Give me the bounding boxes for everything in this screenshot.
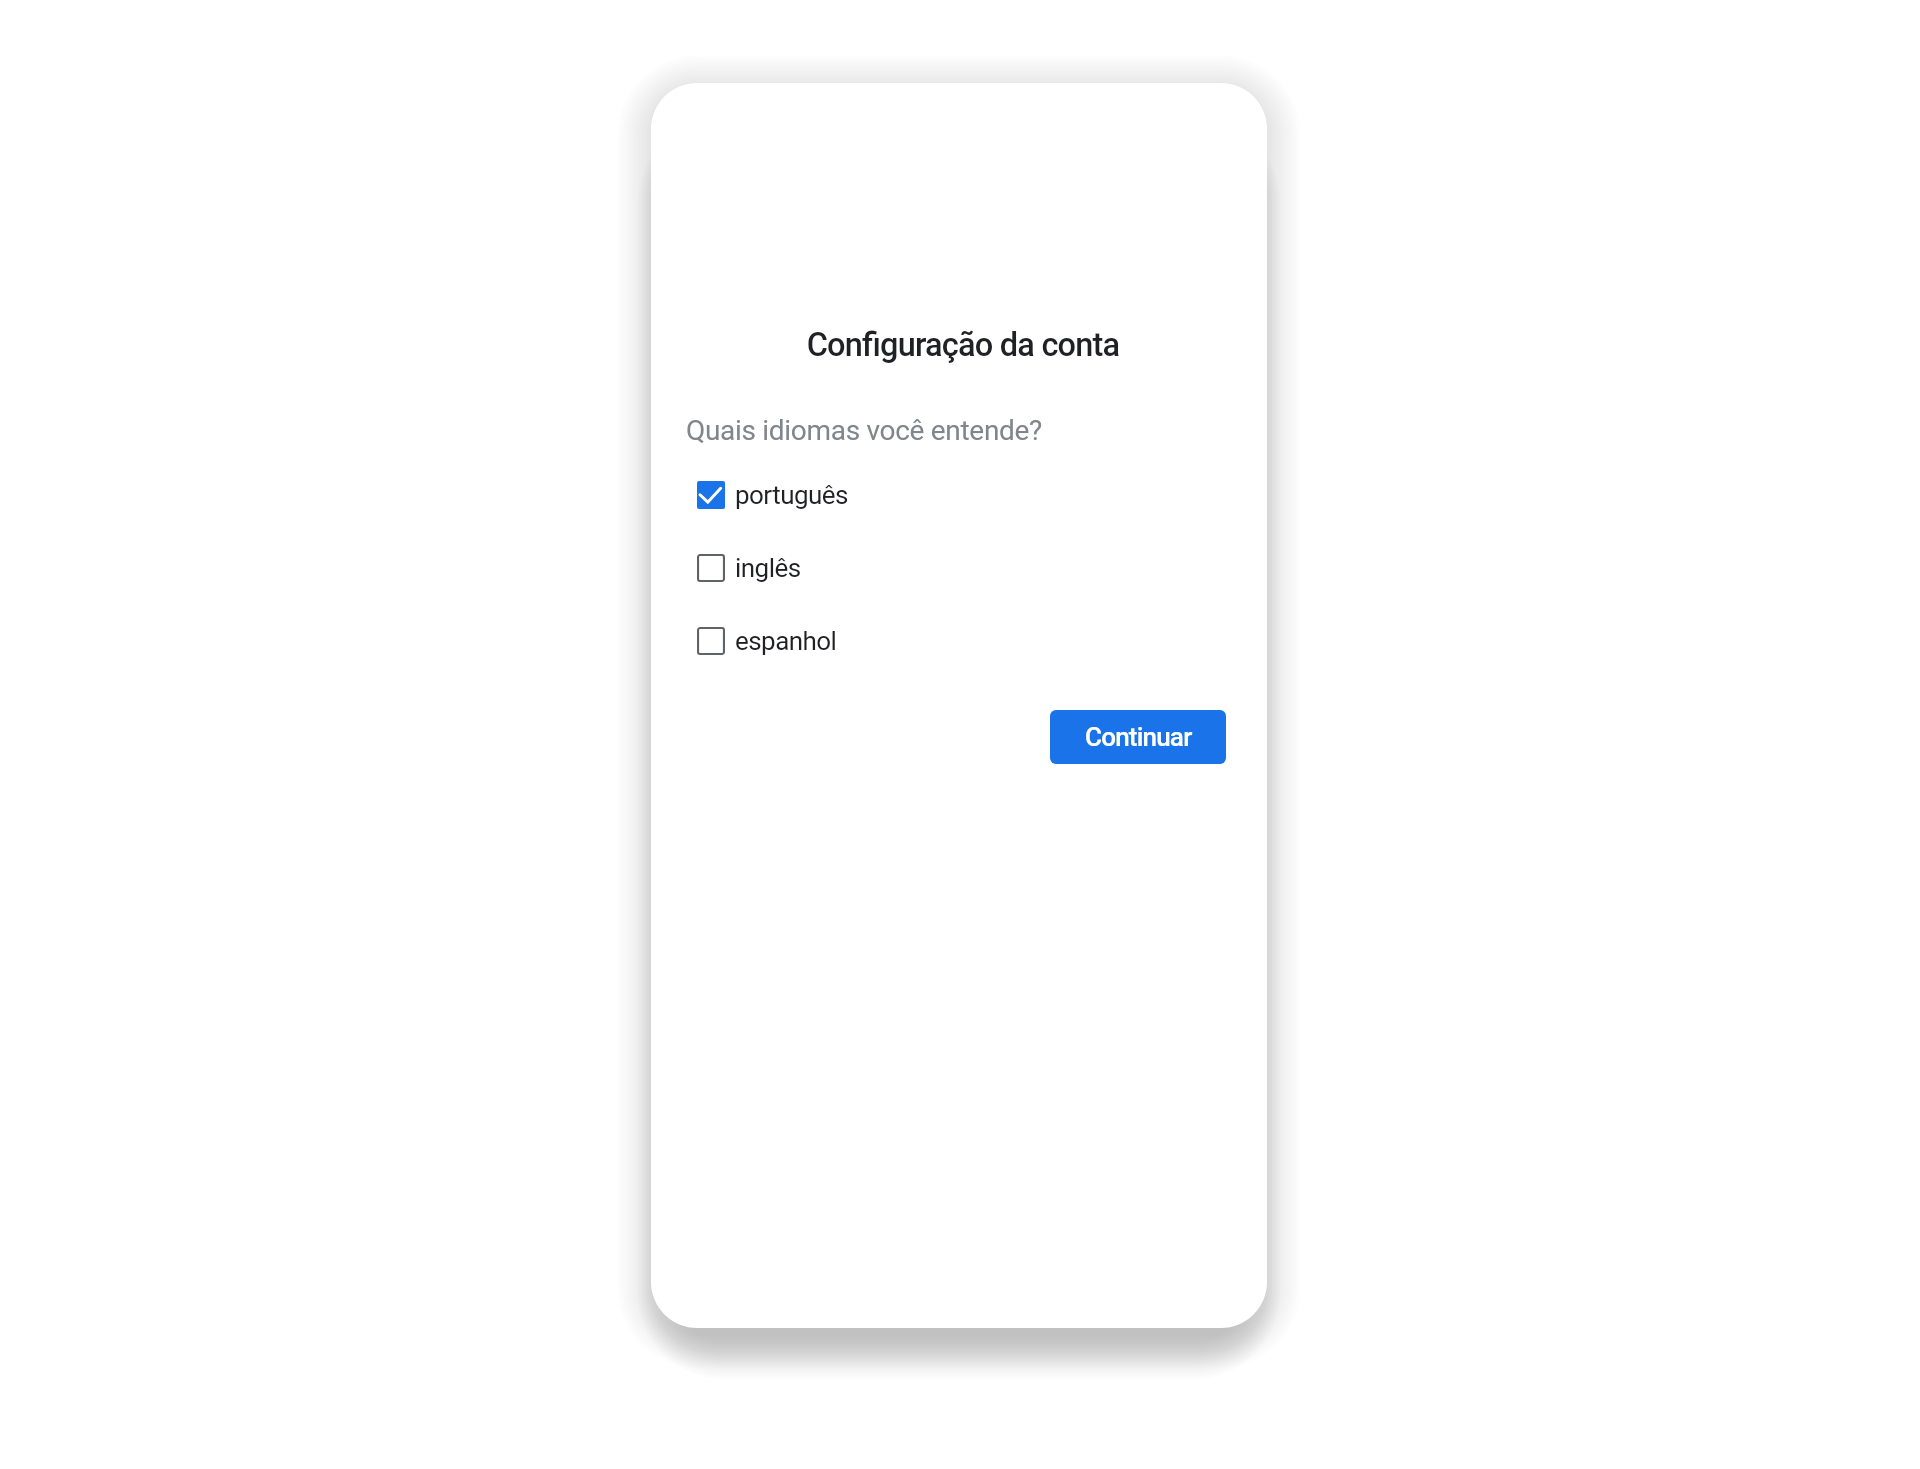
button[interactable]: Continuar bbox=[1050, 710, 1226, 764]
staticText: Quais idiomas você entende? bbox=[686, 414, 1043, 447]
staticText: Continuar bbox=[1085, 722, 1192, 752]
button[interactable]: espanhol bbox=[686, 619, 851, 663]
staticText: espanhol bbox=[735, 626, 837, 656]
staticText: inglês bbox=[735, 553, 801, 583]
button[interactable]: português bbox=[686, 473, 862, 517]
button[interactable]: inglês bbox=[686, 546, 815, 590]
staticText: português bbox=[735, 480, 848, 510]
staticText: Configuração da conta bbox=[655, 326, 1267, 364]
